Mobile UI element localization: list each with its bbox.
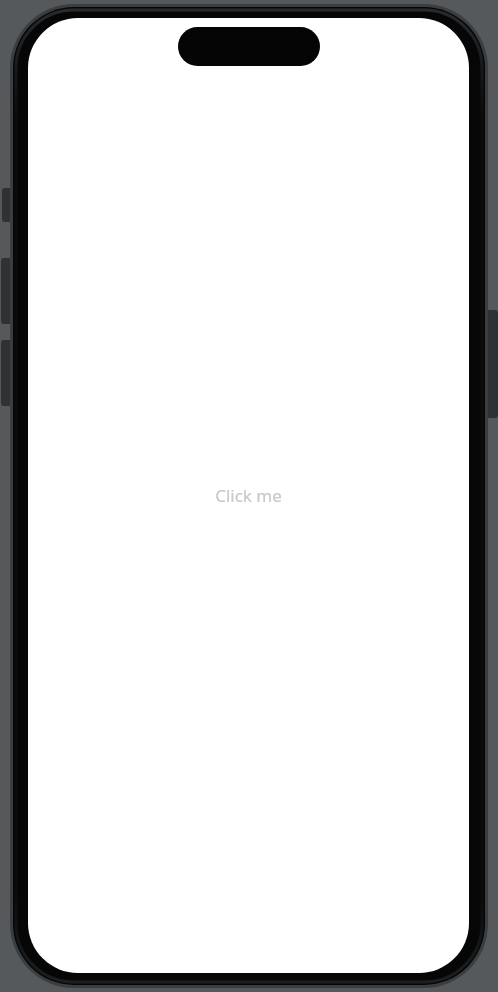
button[interactable]: Click me xyxy=(201,476,296,515)
staticText: Click me xyxy=(215,484,282,507)
other: Dynamic Island xyxy=(178,27,320,66)
